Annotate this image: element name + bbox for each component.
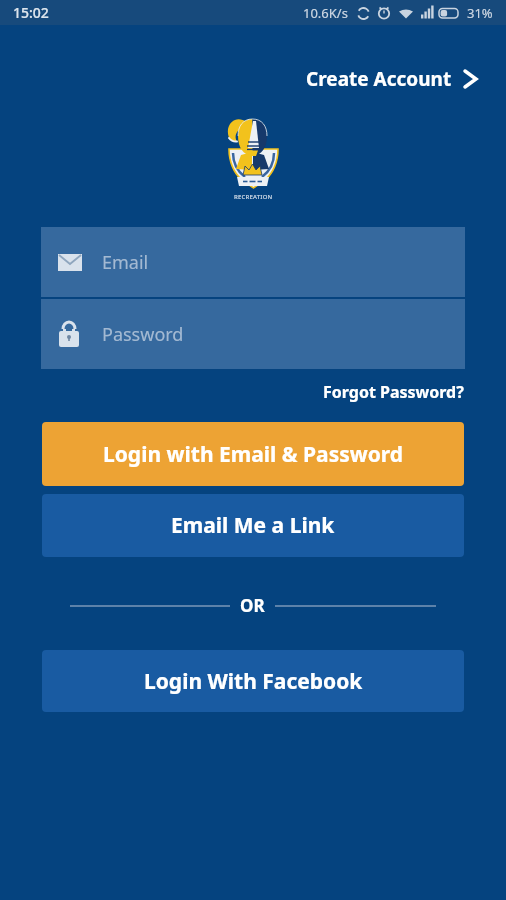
staticText: RECREATION bbox=[234, 193, 273, 201]
staticText: Forgot Password? bbox=[323, 381, 464, 403]
button[interactable]: Login With Facebook bbox=[42, 650, 464, 712]
staticText: 31% bbox=[467, 4, 493, 22]
staticText: Email Me a Link bbox=[171, 511, 335, 540]
button[interactable]: Password bbox=[41, 299, 465, 369]
staticText: Login With Facebook bbox=[144, 667, 363, 696]
staticText: Create Account bbox=[306, 66, 452, 92]
staticText: 10.6K/s bbox=[303, 4, 348, 22]
staticText: 15:02 bbox=[13, 3, 49, 22]
staticText: Email bbox=[102, 250, 149, 275]
staticText: OR bbox=[240, 594, 265, 617]
button[interactable]: Login with Email & Password bbox=[42, 422, 464, 486]
staticText: Login with Email & Password bbox=[103, 440, 404, 469]
button[interactable]: Forgot Password? bbox=[323, 381, 506, 403]
button[interactable]: Email Me a Link bbox=[42, 494, 464, 557]
button[interactable]: Create Account bbox=[306, 66, 506, 92]
button[interactable]: Email bbox=[41, 227, 465, 297]
staticText: Password bbox=[102, 322, 184, 347]
